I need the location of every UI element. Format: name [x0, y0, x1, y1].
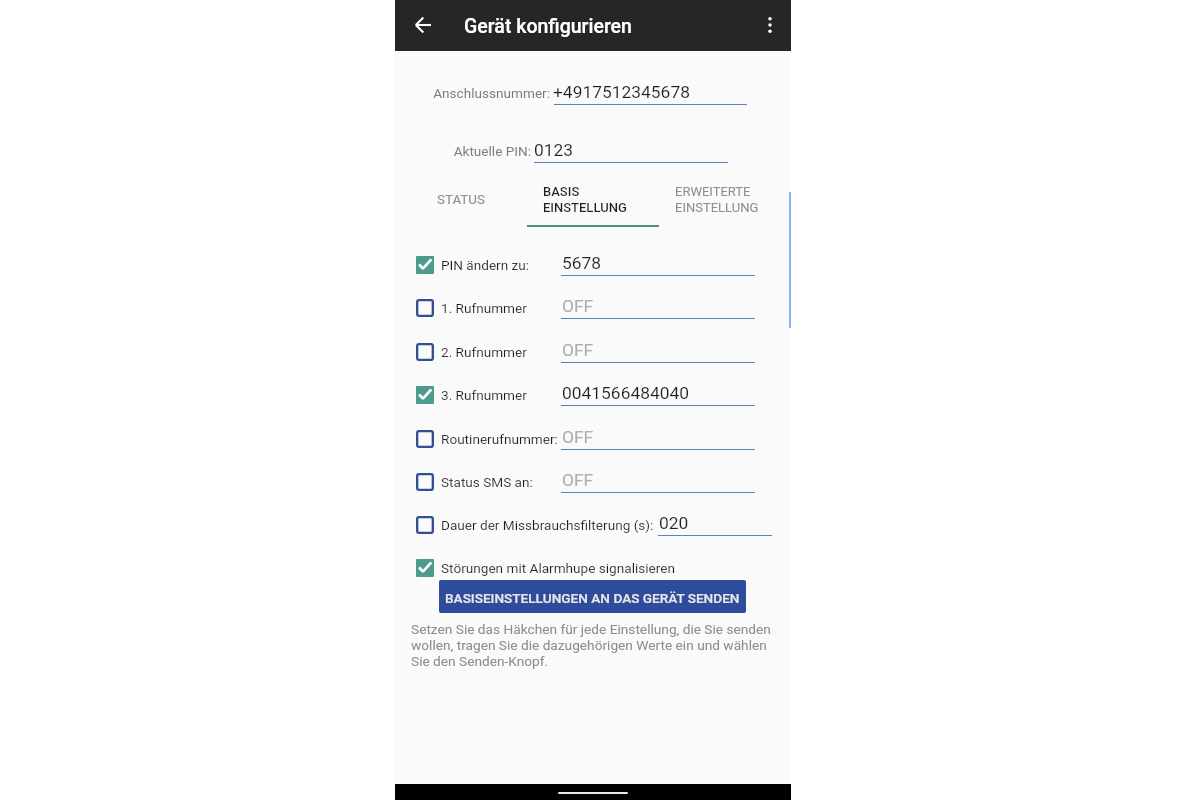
button[interactable]: Dauer der Missbrauchsfilterung (s):	[409, 509, 773, 543]
staticText: 5678	[562, 253, 602, 273]
staticText: OFF	[562, 427, 594, 447]
button[interactable]: Anschlussnummer	[554, 78, 747, 106]
button[interactable]: Zurück	[404, 6, 442, 44]
button[interactable]: PIN ändern zu:	[409, 249, 773, 283]
button[interactable]: 2. Rufnummer	[409, 336, 773, 370]
button[interactable]: ERWEITERTE EINSTELLUNG	[659, 178, 791, 227]
staticText: Setzen Sie das Häkchen für jede Einstell…	[411, 621, 773, 669]
staticText: OFF	[562, 296, 594, 316]
button[interactable]: BASIS EINSTELLUNG	[527, 178, 659, 227]
staticText: Aktuelle PIN:	[395, 143, 531, 159]
staticText: 2. Rufnummer	[441, 344, 527, 360]
staticText: Anschlussnummer:	[395, 85, 550, 101]
staticText: 1. Rufnummer	[441, 300, 527, 316]
staticText: Störungen mit Alarmhupe signalisieren	[441, 560, 675, 576]
staticText: Dauer der Missbrauchsfilterung (s):	[441, 517, 654, 533]
staticText: 020	[659, 513, 689, 533]
button[interactable]: Aktuelle PIN	[534, 136, 728, 164]
staticText: Gerät konfigurieren	[464, 15, 632, 38]
staticText: Status SMS an:	[441, 474, 533, 490]
staticText: 0041566484040	[562, 383, 690, 403]
staticText: BASISEINSTELLUNGEN AN DAS GERÄT SENDEN	[445, 590, 740, 606]
button[interactable]: BASISEINSTELLUNGEN AN DAS GERÄT SENDEN	[439, 580, 746, 613]
staticText: Routinerufnummer:	[441, 431, 558, 447]
button[interactable]: 3. Rufnummer	[409, 379, 773, 413]
staticText: OFF	[562, 340, 594, 360]
button[interactable]: 1. Rufnummer	[409, 292, 773, 326]
button[interactable]: Störungen mit Alarmhupe signalisieren	[409, 552, 773, 586]
staticText: +4917512345678	[553, 82, 690, 102]
staticText: 0123	[534, 140, 574, 160]
button[interactable]: Status SMS an:	[409, 466, 773, 500]
button[interactable]: Mehr Optionen	[751, 6, 789, 44]
staticText: 3. Rufnummer	[441, 387, 527, 403]
staticText: OFF	[562, 470, 594, 490]
button[interactable]: STATUS	[395, 178, 527, 227]
button[interactable]: Routinerufnummer:	[409, 423, 773, 457]
staticText: STATUS	[437, 192, 485, 208]
staticText: PIN ändern zu:	[441, 257, 530, 273]
